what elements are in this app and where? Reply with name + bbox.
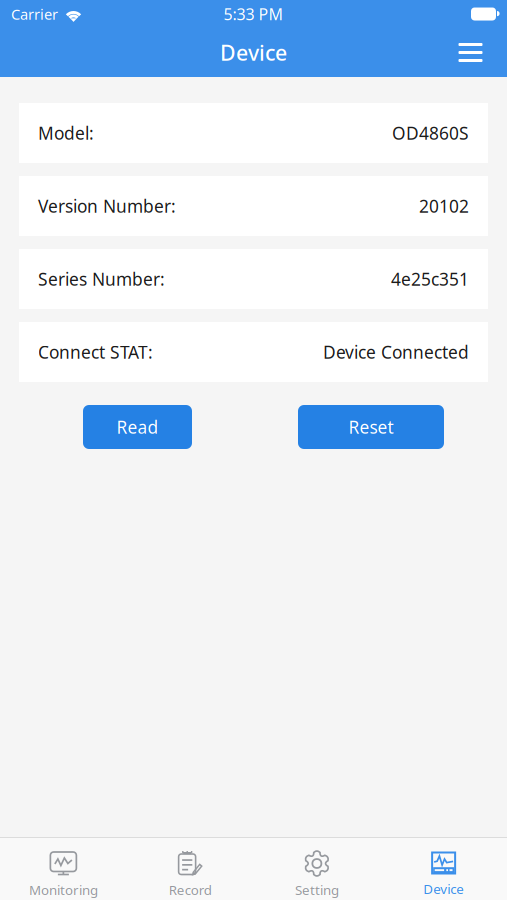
staticText: 5:33 PM xyxy=(223,3,283,25)
staticText: OD4860S xyxy=(392,121,469,144)
staticText: Connect STAT: xyxy=(38,340,153,363)
staticText: Carrier xyxy=(11,4,58,24)
staticText: Series Number: xyxy=(38,267,165,290)
button[interactable]: Read xyxy=(83,405,192,449)
staticText: Device xyxy=(423,880,464,898)
button[interactable]: Device xyxy=(380,838,507,900)
staticText: Reset xyxy=(348,415,393,438)
button[interactable]: Setting xyxy=(253,838,380,900)
button[interactable]: Menu xyxy=(446,28,495,77)
staticText: Record xyxy=(169,881,212,899)
button[interactable]: Monitoring xyxy=(0,838,127,900)
button[interactable]: Record xyxy=(127,838,254,900)
staticText: 4e25c351 xyxy=(391,267,469,290)
staticText: Version Number: xyxy=(38,194,176,217)
staticText: 20102 xyxy=(419,194,469,217)
staticText: Model: xyxy=(38,121,94,144)
staticText: Read xyxy=(116,415,158,438)
staticText: Device xyxy=(220,38,287,67)
staticText: Setting xyxy=(295,881,339,899)
staticText: Device Connected xyxy=(323,340,469,363)
button[interactable]: Reset xyxy=(298,405,444,449)
staticText: Monitoring xyxy=(29,881,98,899)
